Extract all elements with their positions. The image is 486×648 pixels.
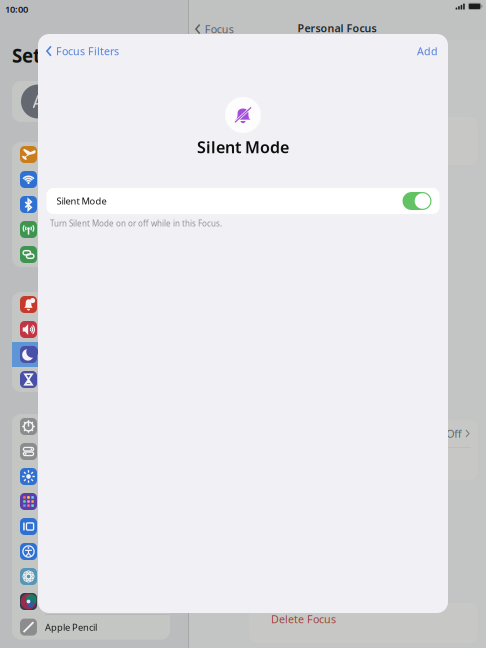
button[interactable]: Settings item (12, 192, 170, 217)
button[interactable]: Silent Mode (46, 188, 439, 214)
staticText: A (32, 90, 43, 113)
button[interactable]: Settings item (12, 367, 170, 392)
button[interactable]: Settings item (12, 489, 170, 514)
button[interactable]: Settings item (12, 167, 170, 192)
staticText: 10:00 (5, 3, 28, 15)
staticText: Apple Pencil (45, 621, 97, 633)
staticText: Personal Focus (297, 21, 376, 35)
staticText: Turn Silent Mode on or off while in this… (50, 218, 222, 229)
button[interactable]: Settings item (12, 514, 170, 539)
button[interactable]: Settings item (12, 342, 170, 367)
button[interactable]: Siri & Search (12, 589, 170, 614)
staticText: Silent Mode (56, 195, 106, 207)
staticText: Settings (12, 43, 88, 68)
staticText: Add (417, 44, 438, 58)
button[interactable]: Settings item (12, 292, 170, 317)
button[interactable]: Focus (191, 18, 238, 40)
button[interactable]: Settings item (12, 464, 170, 489)
button[interactable]: Settings item (12, 242, 170, 267)
button[interactable]: Add (407, 38, 448, 64)
button[interactable]: Settings item (12, 217, 170, 242)
button[interactable]: Settings item (12, 539, 170, 564)
button[interactable]: Settings item (12, 142, 170, 167)
staticText: Delete Focus (271, 612, 336, 626)
staticText: Focus (205, 22, 234, 36)
staticText: Focus Filters (56, 44, 119, 58)
staticText: Off (446, 426, 461, 441)
button[interactable]: Settings item (12, 414, 170, 439)
button[interactable]: Settings item (12, 317, 170, 342)
button[interactable]: Settings item (12, 439, 170, 464)
staticText: Silent Mode (197, 136, 289, 158)
button[interactable]: Apple Pencil (12, 615, 170, 640)
button[interactable]: Focus Filters (38, 38, 127, 64)
button[interactable]: Settings item (12, 564, 170, 589)
